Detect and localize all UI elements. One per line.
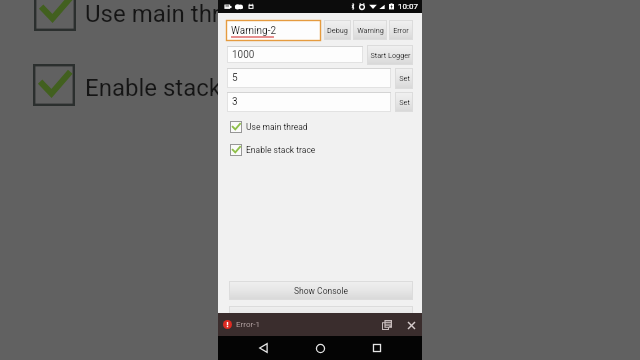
staticText: 3: [232, 96, 238, 108]
staticText: 5: [232, 72, 238, 84]
staticText: Enable stack: [85, 74, 221, 102]
staticText: Warning: [357, 26, 384, 35]
staticText: Start Logger: [370, 51, 411, 60]
button[interactable]: Start Logger: [367, 45, 413, 65]
button[interactable]: Home: [308, 336, 332, 360]
staticText: Use main thread: [246, 122, 308, 132]
button[interactable]: Set: [395, 92, 413, 112]
button[interactable]: Enable stack trace: [226, 143, 366, 157]
staticText: 10:07: [398, 2, 418, 11]
staticText: Use main thr: [85, 0, 220, 28]
button[interactable]: Debug: [324, 20, 351, 40]
staticText: Set: [399, 74, 410, 83]
button[interactable]: Recent apps: [365, 336, 389, 360]
button[interactable]: Close: [404, 318, 418, 332]
staticText: Error: [393, 26, 409, 35]
button[interactable]: 1000: [227, 46, 363, 63]
button[interactable]: Warning: [353, 20, 387, 40]
button[interactable]: Use main thread: [226, 120, 366, 134]
staticText: Show Console: [294, 286, 348, 296]
button[interactable]: Set: [395, 68, 413, 89]
staticText: 1000: [232, 49, 255, 61]
button[interactable]: Back: [251, 336, 275, 360]
button[interactable]: Warning-2: [226, 20, 321, 41]
staticText: Debug: [327, 26, 348, 35]
button[interactable]: Copy log: [379, 317, 395, 333]
button[interactable]: Show Console: [229, 281, 413, 300]
button[interactable]: Button: [229, 306, 413, 325]
staticText: Set: [399, 98, 410, 107]
button[interactable]: Error: [389, 20, 413, 40]
staticText: Enable stack trace: [246, 145, 316, 155]
button[interactable]: 3: [227, 92, 391, 112]
button[interactable]: 5: [227, 68, 391, 88]
staticText: Warning-2: [231, 25, 277, 37]
staticText: Error-1: [236, 320, 260, 329]
